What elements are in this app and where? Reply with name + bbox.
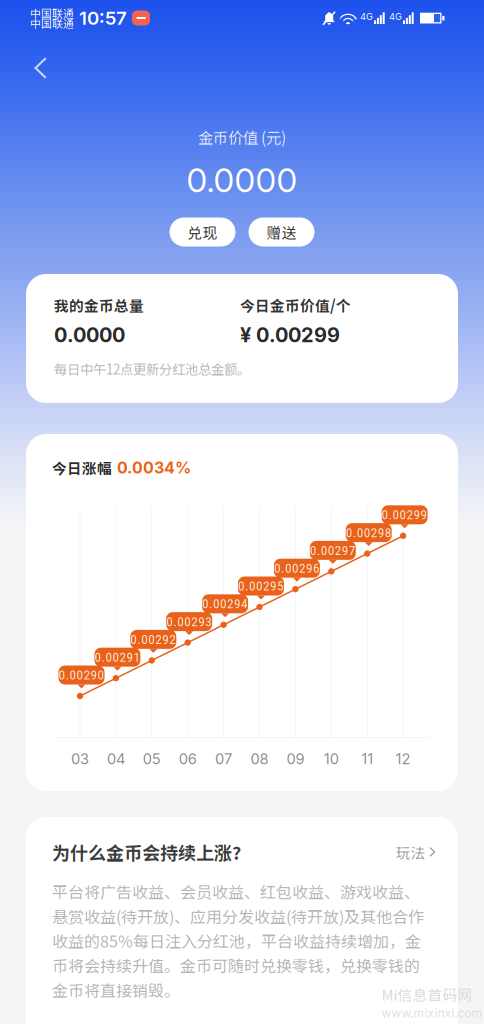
button[interactable]: 赠送 xyxy=(248,217,314,246)
staticText: 04 xyxy=(107,750,125,768)
staticText: 悬赏收益(待开放)、应用分发收益(待开放)及其他合作 xyxy=(52,904,424,927)
staticText: 03 xyxy=(71,750,89,768)
button[interactable]: Back xyxy=(20,48,60,88)
button[interactable]: 玩法 xyxy=(395,841,436,863)
staticText: 0.00297 xyxy=(310,543,356,558)
staticText: 中国联通 xyxy=(30,15,74,31)
staticText: 09 xyxy=(286,750,304,768)
staticText: 兑现 xyxy=(187,221,217,243)
staticText: 0.00299 xyxy=(382,507,428,523)
staticText: 12 xyxy=(396,750,411,768)
staticText: 0.00295 xyxy=(238,578,284,594)
staticText: www.mixinxi.com xyxy=(381,1006,482,1020)
staticText: 08 xyxy=(250,750,268,768)
staticText: 收益的85%每日注入分红池，平台收益持续增加，金 xyxy=(52,929,421,952)
staticText: 币将会持续升值。金币可随时兑换零钱，兑换零钱的 xyxy=(52,953,420,977)
staticText: 11 xyxy=(361,750,373,768)
staticText: 06 xyxy=(179,750,197,768)
staticText: 07 xyxy=(215,750,232,768)
staticText: Mi信息首码网 xyxy=(381,984,472,1005)
staticText: ¥ 0.00299 xyxy=(240,323,340,347)
button[interactable]: 兑现 xyxy=(169,217,235,246)
staticText: 0.00290 xyxy=(58,667,104,683)
staticText: 0.00292 xyxy=(130,632,176,647)
staticText: 4G xyxy=(389,11,402,22)
staticText: 0.0000 xyxy=(54,323,125,347)
staticText: 玩法 xyxy=(395,841,425,863)
staticText: 0.0034% xyxy=(117,458,191,477)
staticText: 我的金币总量 xyxy=(54,294,144,316)
staticText: 赠送 xyxy=(266,221,296,243)
staticText: 0.00293 xyxy=(166,614,212,629)
staticText: 金币价值 (元) xyxy=(198,126,286,148)
staticText: 0.00298 xyxy=(346,525,392,540)
staticText: 每日中午12点更新分红池总金额。 xyxy=(54,359,250,378)
staticText: 金币将直接销毁。 xyxy=(52,978,180,1001)
staticText: 10 xyxy=(324,750,339,768)
staticText: 05 xyxy=(143,750,161,768)
staticText: 0.00296 xyxy=(274,560,320,576)
staticText: 10:57 xyxy=(79,7,127,29)
staticText: 0.00294 xyxy=(202,596,248,612)
staticText: 中国联通 xyxy=(30,5,74,21)
staticText: 0.0000 xyxy=(186,160,297,200)
staticText: 0.00291 xyxy=(94,649,140,665)
staticText: 为什么金币会持续上涨? xyxy=(52,839,241,865)
staticText: 今日金币价值/个 xyxy=(240,294,351,316)
staticText: 4G xyxy=(360,11,373,22)
staticText: 平台将广告收益、会员收益、红包收益、游戏收益、 xyxy=(52,880,420,903)
staticText: 今日涨幅 xyxy=(52,457,112,478)
